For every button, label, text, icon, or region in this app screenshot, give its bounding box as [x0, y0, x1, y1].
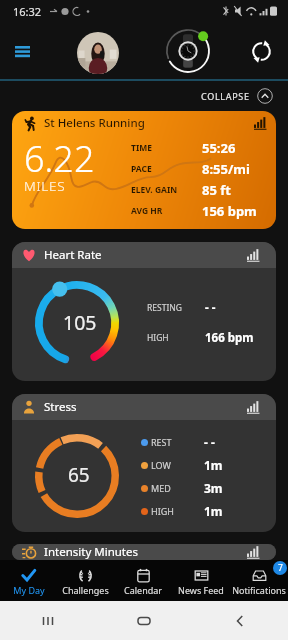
staticText: AVG HR [131, 205, 202, 217]
staticText: PACE [131, 163, 202, 175]
staticText: 7 [278, 562, 283, 574]
staticText: 1m [204, 457, 223, 473]
button[interactable]: Notifications [230, 560, 288, 601]
button[interactable]: Open navigation menu [6, 35, 38, 67]
staticText: - - [204, 434, 215, 450]
staticText: My Day [13, 584, 45, 596]
staticText: MED [151, 482, 204, 494]
staticText: 8:55/mi [202, 160, 250, 178]
staticText: 1m [204, 503, 223, 519]
button[interactable]: Calendar [114, 560, 172, 601]
staticText: 105 [63, 309, 97, 336]
staticText: MILES [24, 177, 66, 195]
button[interactable]: Heart Rate [12, 242, 276, 381]
button[interactable]: My Day [0, 560, 57, 601]
staticText: Intensity Minutes [44, 544, 138, 560]
staticText: 65 [68, 462, 90, 488]
button[interactable]: Intensity Minutes [12, 544, 276, 560]
button[interactable]: Refresh [244, 34, 278, 68]
button[interactable]: Stress [12, 394, 276, 532]
button[interactable]: St Helens Running [12, 111, 276, 229]
staticText: ELEV. GAIN [131, 184, 202, 196]
staticText: Stress [44, 399, 77, 415]
staticText: Calendar [124, 584, 162, 596]
button[interactable]: COLLAPSE [198, 85, 276, 107]
staticText: Heart Rate [44, 247, 102, 263]
staticText: 3m [204, 480, 223, 496]
staticText: LOW [151, 459, 204, 471]
staticText: News Feed [178, 584, 224, 596]
staticText: REST [151, 436, 204, 448]
button[interactable]: News Feed [172, 560, 230, 601]
button[interactable]: Home [96, 601, 192, 640]
button[interactable]: Back [192, 601, 288, 640]
staticText: COLLAPSE [201, 90, 250, 102]
staticText: - - [205, 300, 216, 316]
staticText: RESTING [147, 302, 205, 314]
staticText: TIME [131, 142, 202, 154]
staticText: 6.22 [24, 134, 95, 183]
button[interactable]: Recent apps [0, 601, 96, 640]
staticText: 166 bpm [205, 330, 254, 346]
button[interactable]: Challenges [57, 560, 114, 601]
staticText: St Helens Running [44, 115, 145, 131]
button[interactable]: Profile [77, 32, 119, 74]
staticText: 55:26 [202, 139, 236, 157]
staticText: 16:32 [13, 4, 42, 19]
staticText: Challenges [62, 584, 109, 596]
button[interactable]: Connected watch [164, 27, 212, 75]
staticText: 156 bpm [202, 202, 257, 220]
staticText: HIGH [151, 505, 204, 517]
staticText: 85 ft [202, 181, 231, 199]
staticText: Notifications [232, 584, 286, 596]
staticText: HIGH [147, 332, 205, 344]
